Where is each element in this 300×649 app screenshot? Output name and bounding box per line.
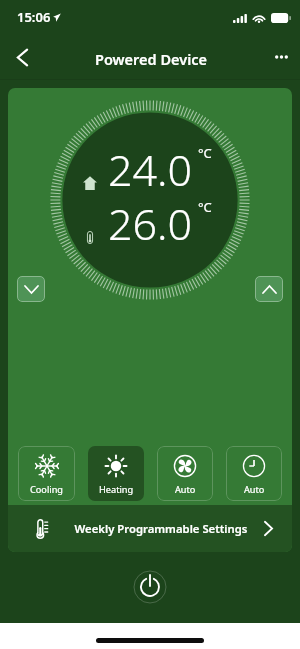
button[interactable]: Weekly Programmable Settings (8, 505, 292, 552)
button[interactable]: Auto (226, 446, 282, 501)
button[interactable]: Heating (88, 446, 144, 501)
button[interactable]: Power (133, 570, 167, 604)
button[interactable]: Decrease temperature (17, 276, 45, 302)
staticText: 15:06 (17, 8, 51, 26)
staticText: Heating (99, 483, 134, 496)
button[interactable]: Cooling (18, 446, 75, 501)
staticText: Cooling (30, 483, 63, 496)
staticText: °C (198, 198, 212, 216)
button[interactable]: Auto (157, 446, 213, 501)
staticText: 26.0 (108, 194, 193, 253)
staticText: Powered Device (95, 49, 208, 69)
button[interactable]: Increase temperature (255, 276, 283, 302)
staticText: Auto (175, 483, 196, 496)
staticText: Weekly Programmable Settings (53, 521, 269, 536)
button[interactable]: Back (4, 39, 40, 75)
button[interactable]: More options (263, 39, 299, 75)
staticText: °C (198, 144, 212, 162)
staticText: 24.0 (108, 140, 193, 199)
staticText: Auto (244, 483, 265, 496)
